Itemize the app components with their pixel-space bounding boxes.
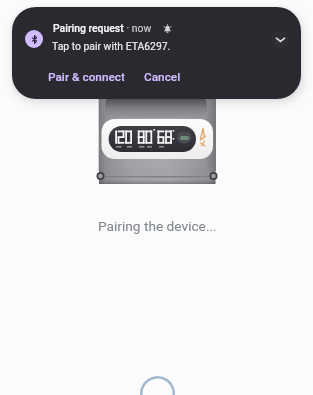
button[interactable]: Pairing request xyxy=(12,7,301,99)
staticText: Tap to pair with ETA6297. xyxy=(52,40,171,52)
button[interactable]: Pair & connect xyxy=(48,67,125,87)
staticText: · now xyxy=(124,22,154,34)
staticText: Pairing the device... xyxy=(98,218,217,234)
staticText: Pairing request xyxy=(53,22,124,34)
button[interactable]: Expand notification xyxy=(271,30,289,48)
button[interactable]: Cancel xyxy=(144,67,181,87)
staticText: Cancel xyxy=(144,70,181,84)
staticText: Pair & connect xyxy=(48,70,125,84)
